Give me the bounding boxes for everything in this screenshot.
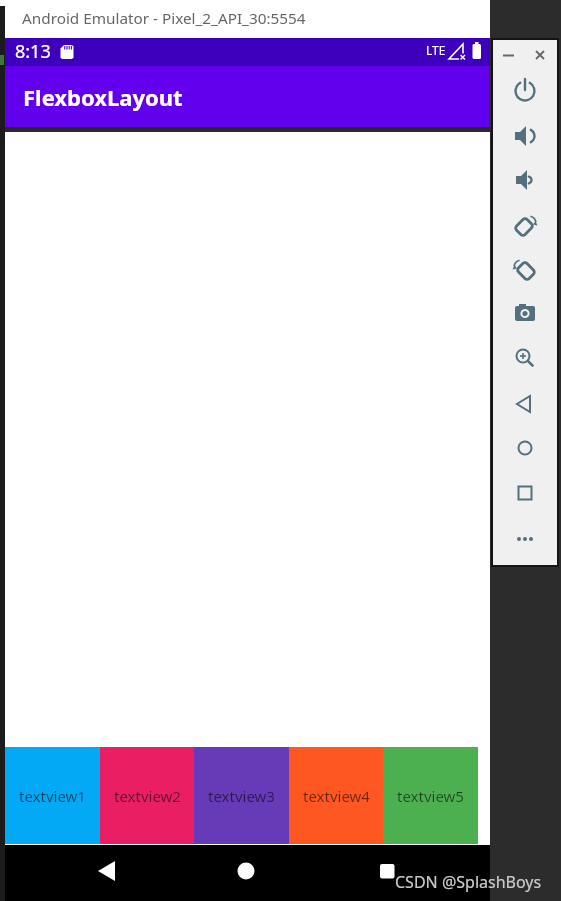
button[interactable] [363, 849, 411, 897]
button[interactable] [505, 160, 545, 200]
button[interactable] [505, 473, 545, 513]
staticText: textview4 [303, 786, 370, 806]
staticText: textview3 [208, 786, 275, 806]
button[interactable] [222, 849, 270, 897]
button[interactable] [505, 338, 545, 378]
button[interactable] [505, 519, 545, 559]
staticText: CSDN @SplashBoys [395, 871, 542, 893]
button[interactable] [498, 45, 518, 65]
button[interactable] [505, 71, 545, 111]
button[interactable] [505, 428, 545, 468]
button[interactable]: textview4 [289, 747, 384, 844]
button[interactable] [505, 116, 545, 156]
button[interactable]: textview2 [100, 747, 195, 844]
button[interactable]: textview1 [5, 747, 100, 844]
button[interactable]: textview3 [194, 747, 289, 844]
button[interactable] [505, 249, 545, 289]
staticText: textview1 [19, 786, 86, 806]
staticText: Android Emulator - Pixel_2_API_30:5554 [22, 8, 306, 29]
button[interactable] [505, 384, 545, 424]
button[interactable] [505, 205, 545, 245]
staticText: FlexboxLayout [23, 82, 183, 112]
button[interactable]: textview5 [383, 747, 478, 844]
staticText: LTE [426, 42, 446, 58]
staticText: 8:13 [15, 39, 51, 64]
button[interactable] [505, 293, 545, 333]
staticText: textview2 [114, 786, 181, 806]
button[interactable] [530, 45, 550, 65]
button[interactable] [82, 849, 130, 897]
staticText: textview5 [397, 786, 464, 806]
